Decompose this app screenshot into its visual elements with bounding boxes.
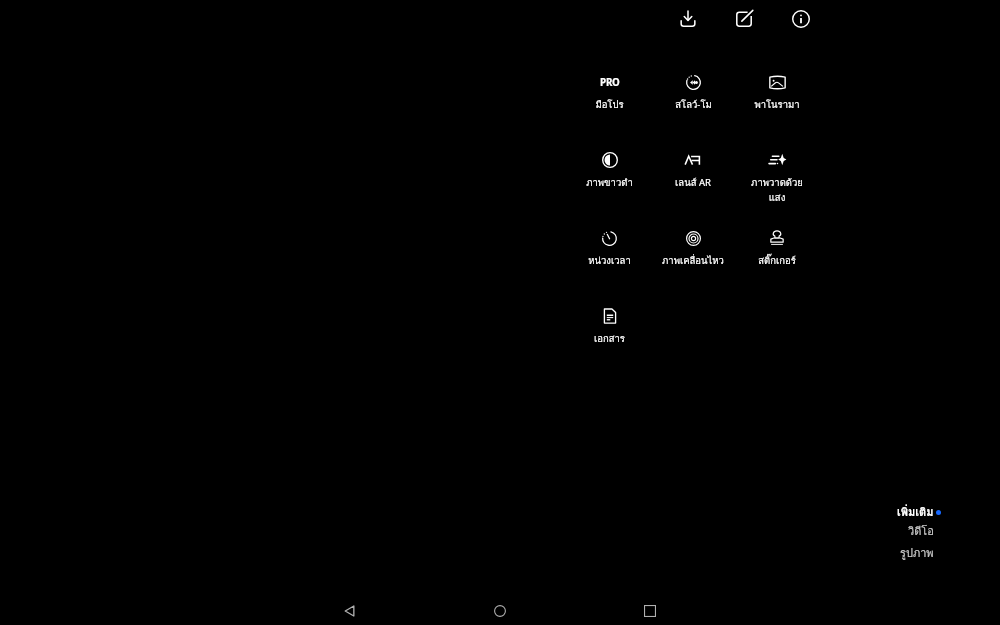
button[interactable]: Recents (630, 591, 670, 625)
button[interactable]: Edit (727, 2, 761, 36)
button[interactable]: เพิ่มเติม (834, 502, 934, 521)
staticText: ภาพวาดด้วยแสง (746, 175, 808, 205)
button[interactable]: Back (330, 591, 370, 625)
button[interactable]: PRO (578, 73, 640, 129)
staticText: เพิ่มเติม (897, 503, 934, 520)
staticText: เอกสาร (594, 331, 625, 346)
button[interactable]: ภาพขาวดำ (578, 151, 640, 207)
staticText: สติ๊กเกอร์ (758, 253, 796, 268)
staticText: วิดีโอ (908, 522, 934, 539)
button[interactable]: Info (784, 2, 818, 36)
staticText: เลนส์ AR (675, 175, 711, 190)
button[interactable]: สโลว์-โม (662, 73, 724, 129)
button[interactable]: พาโนรามา (746, 73, 808, 129)
staticText: พาโนรามา (754, 97, 800, 112)
button[interactable]: Download (671, 2, 705, 36)
button[interactable]: เอกสาร (578, 307, 640, 363)
button[interactable]: ภาพวาดด้วยแสง (746, 151, 808, 207)
staticText: ภาพเคลื่อนไหว (662, 253, 724, 268)
staticText: สโลว์-โม (675, 97, 712, 112)
button[interactable]: เลนส์ AR (662, 151, 724, 207)
staticText: รูปภาพ (900, 544, 934, 561)
button[interactable]: หน่วงเวลา (578, 229, 640, 285)
staticText: มือโปร (595, 97, 624, 112)
button[interactable]: สติ๊กเกอร์ (746, 229, 808, 285)
button[interactable]: วิดีโอ (834, 521, 934, 540)
staticText: ภาพขาวดำ (586, 175, 633, 190)
button[interactable]: ภาพเคลื่อนไหว (662, 229, 724, 285)
staticText: PRO (600, 76, 620, 89)
staticText: หน่วงเวลา (588, 253, 631, 268)
button[interactable]: Home (480, 591, 520, 625)
button[interactable]: รูปภาพ (834, 543, 934, 562)
